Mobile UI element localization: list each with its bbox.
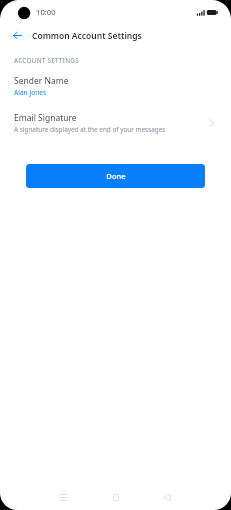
staticText: Common Account Settings <box>32 30 142 42</box>
button[interactable]: Sender Name <box>0 65 231 103</box>
button[interactable]: Home <box>104 485 128 509</box>
button[interactable]: Recent apps <box>51 485 75 509</box>
staticText: A signature displayed at the end of your… <box>14 125 166 134</box>
staticText: Sender Name <box>14 75 69 87</box>
staticText: 10:00 <box>36 7 56 17</box>
staticText: Alan Jones <box>14 88 47 97</box>
staticText: Email Signature <box>14 112 77 124</box>
staticText: Done <box>106 171 126 181</box>
button[interactable]: Email Signature <box>0 102 231 140</box>
staticText: ACCOUNT SETTINGS <box>14 56 79 65</box>
button[interactable]: Back <box>8 26 27 45</box>
button[interactable]: Back <box>155 485 179 509</box>
button[interactable]: Done <box>26 164 205 188</box>
